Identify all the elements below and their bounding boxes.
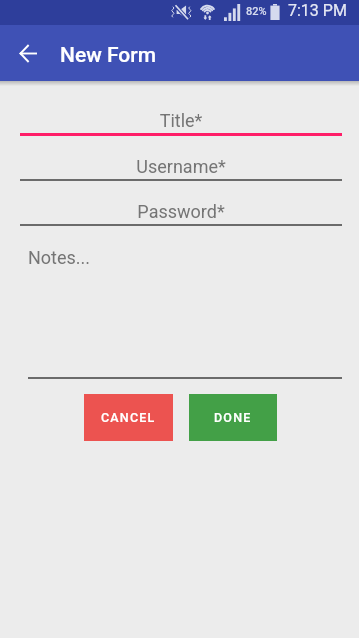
staticText: Username* [20, 156, 342, 177]
button[interactable]: DONE [189, 394, 277, 441]
staticText: CANCEL [101, 410, 156, 425]
staticText: Notes... [28, 247, 91, 268]
button[interactable]: Password* [20, 197, 342, 227]
staticText: New Form [60, 43, 156, 68]
button[interactable]: Notes... [28, 247, 342, 381]
staticText: 7:13 PM [288, 1, 347, 20]
staticText: 82% [246, 5, 267, 18]
button[interactable]: Username* [20, 152, 342, 182]
button[interactable]: Title* [20, 106, 342, 136]
button[interactable]: Back [8, 33, 48, 73]
staticText: Password* [20, 201, 342, 222]
button[interactable]: CANCEL [84, 394, 173, 441]
staticText: DONE [214, 410, 252, 425]
staticText: Title* [20, 110, 342, 131]
